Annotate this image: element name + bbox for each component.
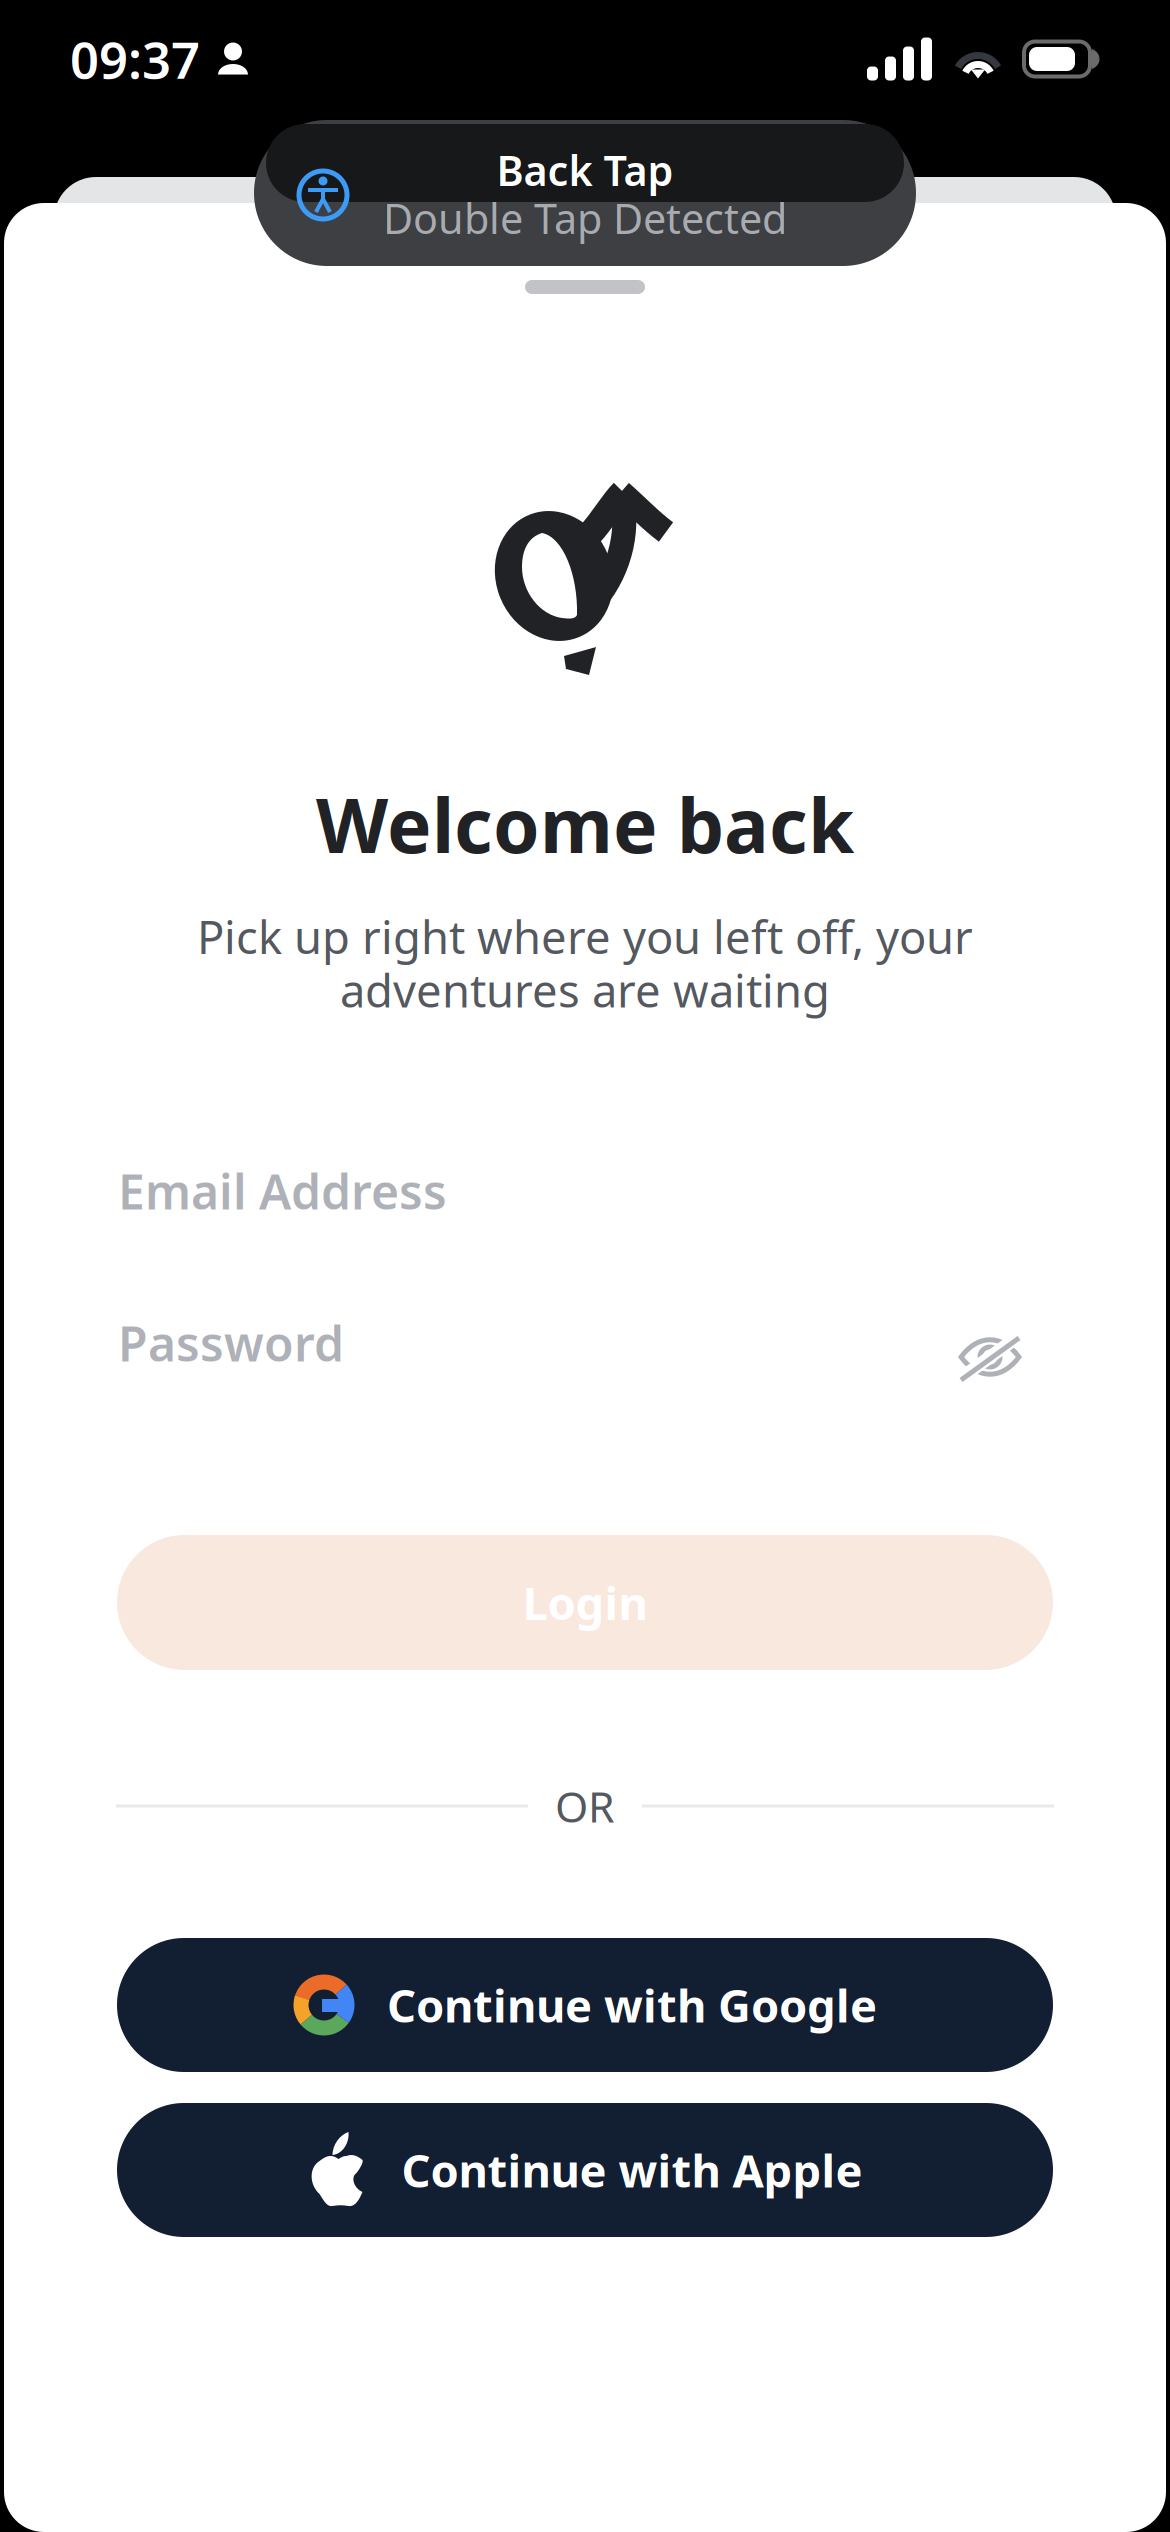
staticText: Double Tap Detected	[383, 191, 787, 245]
staticText: Email Address	[118, 1159, 447, 1223]
staticText: Continue with Google	[387, 1975, 877, 2035]
button[interactable]: Continue with Apple	[117, 2103, 1053, 2237]
button[interactable]: Continue with Google	[117, 1938, 1053, 2072]
staticText: Back Tap	[496, 143, 673, 197]
button[interactable]: Login	[117, 1535, 1053, 1670]
staticText: Welcome back	[316, 774, 854, 874]
staticText: Continue with Apple	[401, 2140, 862, 2200]
staticText: Pick up right where you left off, your	[197, 906, 973, 967]
staticText: Password	[118, 1311, 344, 1375]
staticText: Login	[522, 1572, 647, 1633]
staticText: 09:37	[70, 25, 200, 93]
button[interactable]: Show password	[957, 1304, 1052, 1382]
staticText: OR	[555, 1778, 615, 1834]
staticText: adventures are waiting	[340, 960, 830, 1020]
